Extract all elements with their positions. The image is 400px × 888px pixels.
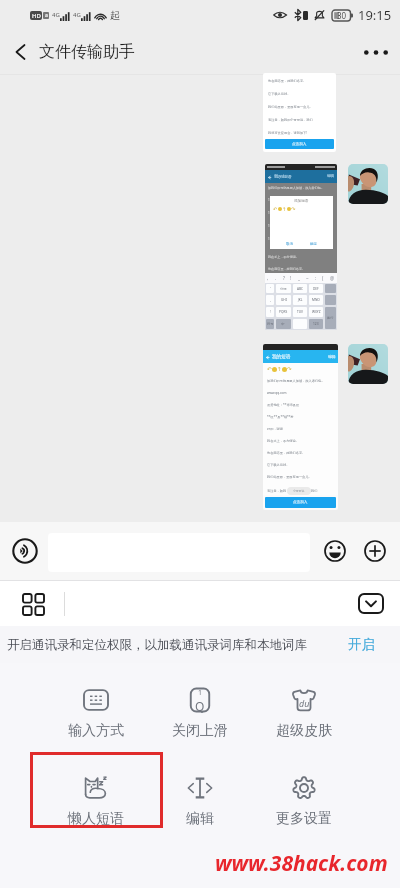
staticText: ↷ [291,206,296,212]
staticText: _ [298,275,300,281]
staticText: 它下载之后就。 [268,92,291,96]
button[interactable]: More options [352,30,400,74]
button[interactable]: 1 [148,687,252,740]
staticText: 点击加入 [293,500,308,505]
button[interactable]: 懒人短语 [44,775,148,828]
button[interactable]: 我的短语 [263,344,338,510]
staticText: 它下载之后就。 [267,463,290,467]
staticText: 符号 [267,322,274,326]
staticText: GHI [281,298,287,302]
staticText: 我在手上，不方便说。 [268,255,299,259]
staticText: **区**县**镇**村 [267,415,294,419]
staticText: ↶ [267,366,272,372]
staticText: PQRS [279,310,288,314]
button[interactable]: Hide keyboard [342,581,400,626]
staticText: 123 [313,322,319,326]
staticText: ! [290,275,292,281]
staticText: WXYZ [312,310,321,314]
staticText: 1 [268,198,270,202]
staticText: 先在商店里，搜我们名字。 [268,267,306,271]
staticText: 起 [110,9,120,22]
staticText: 我们站里面，里面有需一会儿。 [268,105,313,109]
staticText: 1 [268,237,270,241]
staticText: 1 [268,224,270,228]
staticText: 添加短语 [294,199,309,204]
staticText: 分词 [280,287,287,291]
staticText: 我的短语 [272,354,291,360]
staticText: ( [322,275,324,281]
button[interactable]: 先在商店里，搜我们名字。 [263,73,336,152]
staticText: 小哥哥说 [293,489,305,493]
staticText: HD [32,12,41,20]
staticText: 编辑 [327,174,335,179]
staticText: 编辑 [186,810,214,828]
staticText: ? [283,275,285,281]
staticText: 1 [268,211,270,215]
button[interactable]: 更多设置 [252,775,356,828]
staticText: Q [195,698,205,714]
staticText: 确定 [310,242,317,246]
staticText: JKL [298,298,303,302]
button[interactable]: Avatar [348,344,388,384]
staticText: 有注意，跟我的小哥哥说，我们 [268,118,313,122]
staticText: @ [330,275,335,281]
button[interactable]: 开启通讯录和定位权限，以加载通讯录词库和本地词库 [0,626,400,663]
staticText: 我就可去应用会，请我加下! [268,131,308,135]
staticText: 我在手上，不方便说。 [267,439,299,443]
staticText: 输入方式 [68,722,124,740]
staticText: 4G [52,11,60,19]
staticText: ' [270,287,271,291]
staticText: ↑ [282,206,287,212]
staticText: du [299,697,310,709]
staticText: ↶ [273,206,278,212]
staticText: 换行 [327,316,334,320]
staticText: 我们站里面，里面有需一会儿。 [267,475,312,479]
staticText: www.38hack.com [215,849,388,878]
staticText: 懒人短语 [68,810,124,828]
staticText: : [315,275,317,281]
staticText: , [270,298,271,302]
staticText: 取消 [286,242,293,246]
button[interactable]: 输入方式 [44,687,148,740]
staticText: 19:15 [358,6,392,24]
button[interactable]: Keyboard tools [0,581,64,626]
staticText: 点击加入 [292,142,307,147]
staticText: ~ [306,275,309,281]
staticText: . [275,275,277,281]
button[interactable]: Voice input [8,534,42,568]
button[interactable]: Back [0,30,40,74]
button[interactable]: Avatar [348,164,388,204]
staticText: www.qq.com [267,391,287,395]
staticText: 文件传输助手 [39,42,135,62]
staticText: TUV [297,310,304,314]
button[interactable]: du [252,687,356,740]
button[interactable]: More [358,534,392,568]
staticText: DEF [313,287,319,291]
staticText: 4G [73,11,81,19]
staticText: 先在商店里，搜我们名字。 [268,79,307,83]
staticText: 1 [198,688,203,698]
staticText: ABC [297,287,304,291]
staticText: 有注意，跟我 [267,489,287,493]
staticText: , [267,275,269,281]
staticText: 关闭上滑 [172,722,228,740]
staticText: a [45,12,48,19]
staticText: 好的，谢谢 [267,427,283,431]
staticText: 开启通讯录和定位权限，以加载通讯录词库和本地词库 [7,637,307,653]
staticText: ↷ [287,366,292,372]
staticText: MNO [312,298,320,302]
staticText: 更多设置 [276,810,332,828]
button[interactable]: 编辑 [148,775,252,828]
staticText: 30 [337,10,347,21]
staticText: 加我们的号码是要人加坡，加入者们包.. [267,379,323,383]
button[interactable]: 我的短语 [265,164,337,330]
staticText: 我的短语 [274,174,292,180]
button[interactable]: 开启 [348,636,375,653]
button[interactable]: Emoji [318,534,352,568]
staticText: 先在商店里，搜我们名字。 [267,451,306,455]
staticText: ! [270,310,271,314]
staticText: 编辑 [328,354,336,359]
staticText: 我们 [311,489,318,493]
staticText: ↑ [277,366,282,372]
